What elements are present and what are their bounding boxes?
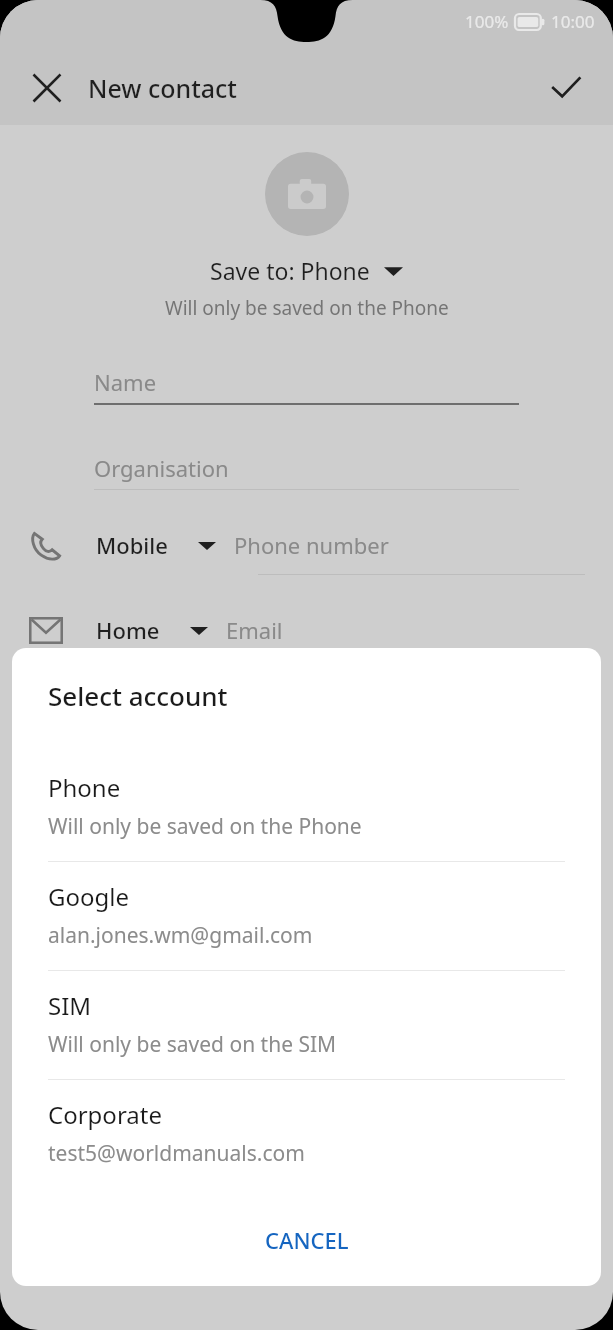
- staticText: Mobile: [96, 530, 168, 560]
- staticText: test5@worldmanuals.com: [48, 1139, 305, 1168]
- staticText: Home: [96, 615, 160, 645]
- button[interactable]: Save: [537, 59, 595, 117]
- staticText: Will only be saved on the SIM: [48, 1030, 337, 1059]
- staticText: Name: [94, 367, 157, 397]
- staticText: Phone: [48, 771, 121, 804]
- staticText: Organisation: [94, 453, 229, 483]
- staticText: Google: [48, 880, 129, 913]
- button[interactable]: Google: [12, 862, 601, 970]
- button[interactable]: Phone: [12, 753, 601, 861]
- staticText: Select account: [48, 678, 228, 713]
- button[interactable]: SIM: [12, 971, 601, 1079]
- staticText: New contact: [88, 71, 237, 105]
- staticText: Phone number: [234, 530, 389, 560]
- button[interactable]: Close: [18, 59, 76, 117]
- button[interactable]: Add photo: [265, 152, 349, 236]
- staticText: Email: [226, 615, 283, 645]
- staticText: Will only be saved on the Phone: [165, 295, 449, 321]
- staticText: CANCEL: [265, 1225, 349, 1255]
- staticText: 10:00: [551, 10, 595, 33]
- staticText: Will only be saved on the Phone: [48, 812, 362, 841]
- staticText: Corporate: [48, 1098, 162, 1131]
- staticText: 100%: [465, 10, 509, 33]
- staticText: Save to: Phone: [210, 255, 370, 286]
- staticText: SIM: [48, 989, 92, 1022]
- staticText: alan.jones.wm@gmail.com: [48, 921, 313, 950]
- button[interactable]: Corporate: [12, 1080, 601, 1188]
- button[interactable]: CANCEL: [245, 1213, 369, 1267]
